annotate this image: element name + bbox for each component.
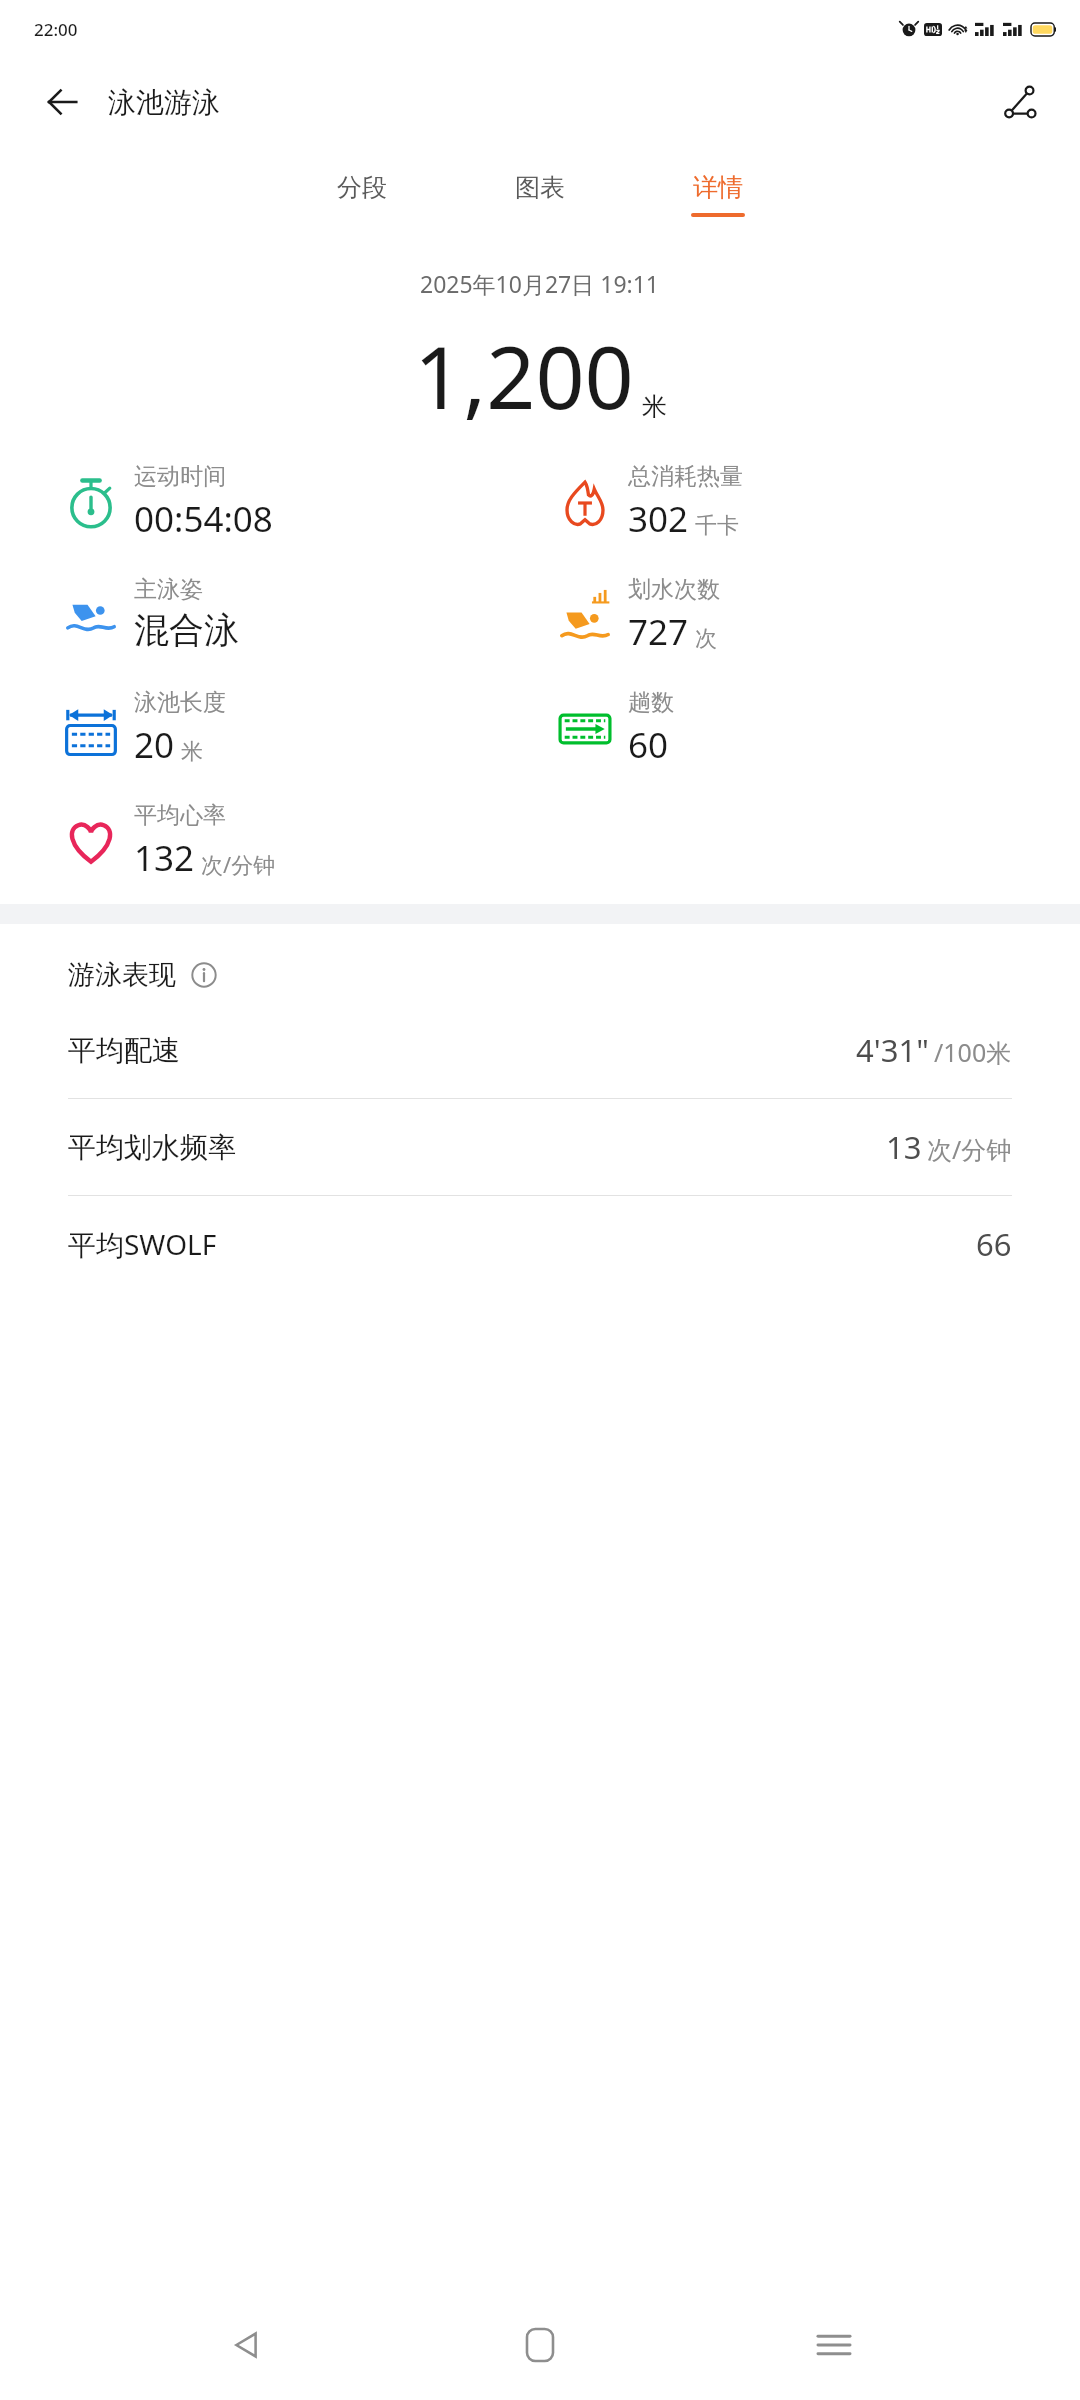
staticText: 分段 bbox=[337, 172, 387, 203]
staticText: 1,200 bbox=[414, 317, 634, 434]
staticText: 千卡 bbox=[695, 512, 739, 540]
staticText: 图表 bbox=[515, 172, 565, 203]
staticText: 混合泳 bbox=[134, 608, 239, 652]
staticText: 泳池长度 bbox=[134, 688, 226, 717]
button[interactable]: 分段 bbox=[302, 166, 422, 223]
staticText: 次/分钟 bbox=[927, 1132, 1012, 1166]
staticText: 20 bbox=[134, 721, 175, 769]
button[interactable]: 详情 bbox=[658, 166, 778, 223]
button[interactable]: Recents bbox=[786, 2297, 882, 2393]
staticText: 66 bbox=[976, 1223, 1012, 1265]
staticText: 平均划水频率 bbox=[68, 1130, 236, 1165]
button[interactable]: 图表 bbox=[480, 166, 600, 223]
staticText: 米 bbox=[642, 391, 667, 422]
staticText: 平均配速 bbox=[68, 1033, 180, 1068]
button[interactable]: Share bbox=[994, 76, 1046, 128]
staticText: /100米 bbox=[934, 1035, 1012, 1069]
staticText: 2025年10月27日 19:11 bbox=[420, 268, 660, 299]
staticText: 平均SWOLF bbox=[68, 1225, 217, 1263]
staticText: 泳池游泳 bbox=[108, 85, 220, 120]
button[interactable]: Info bbox=[188, 959, 220, 991]
button[interactable]: 平均配速 bbox=[0, 1002, 1080, 1099]
button[interactable]: Back bbox=[36, 76, 88, 128]
staticText: 727 bbox=[628, 608, 689, 656]
staticText: 运动时间 bbox=[134, 462, 226, 491]
staticText: 游泳表现 bbox=[68, 958, 176, 992]
staticText: 4'31" bbox=[856, 1029, 929, 1071]
staticText: 次 bbox=[695, 625, 717, 653]
staticText: 00:54:08 bbox=[134, 495, 273, 543]
staticText: 总消耗热量 bbox=[628, 462, 743, 491]
staticText: 平均心率 bbox=[134, 801, 226, 830]
staticText: 132 bbox=[134, 834, 195, 882]
staticText: 趟数 bbox=[628, 688, 674, 717]
button[interactable]: Back bbox=[198, 2297, 294, 2393]
staticText: 详情 bbox=[693, 172, 743, 203]
staticText: 主泳姿 bbox=[134, 575, 203, 604]
staticText: 次/分钟 bbox=[201, 849, 276, 879]
staticText: 米 bbox=[181, 738, 203, 766]
staticText: 22:00 bbox=[34, 18, 78, 41]
button[interactable]: 平均划水频率 bbox=[0, 1099, 1080, 1196]
staticText: 302 bbox=[628, 495, 689, 543]
staticText: 划水次数 bbox=[628, 575, 720, 604]
staticText: 60 bbox=[628, 721, 669, 769]
staticText: 13 bbox=[886, 1126, 922, 1168]
button[interactable]: 平均SWOLF bbox=[0, 1196, 1080, 1292]
button[interactable]: Home bbox=[492, 2297, 588, 2393]
